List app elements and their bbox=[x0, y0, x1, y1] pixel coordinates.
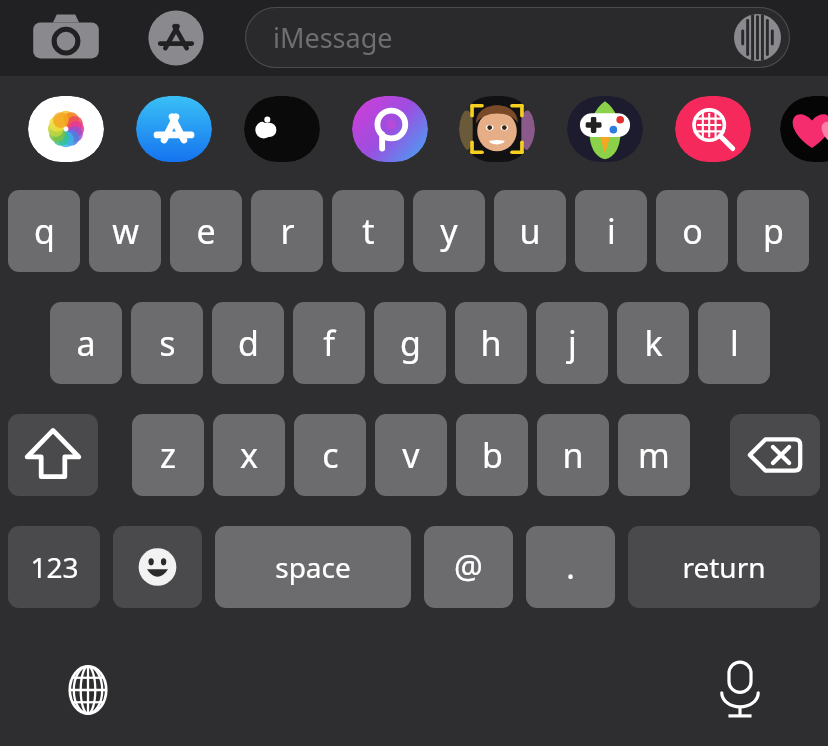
button[interactable]: return bbox=[628, 526, 820, 608]
staticText: b bbox=[482, 432, 503, 478]
button[interactable]: k bbox=[617, 302, 689, 384]
staticText: j bbox=[568, 320, 577, 366]
staticText: c bbox=[322, 432, 339, 478]
button[interactable]: z bbox=[132, 414, 204, 496]
button[interactable]: e bbox=[170, 190, 242, 272]
staticText: l bbox=[730, 320, 739, 366]
button[interactable]: App 3 bbox=[352, 96, 428, 162]
staticText: r bbox=[280, 208, 295, 254]
staticText: i bbox=[607, 208, 616, 254]
button[interactable]: Apps bbox=[140, 8, 212, 68]
staticText: e bbox=[196, 208, 216, 254]
staticText: s bbox=[159, 320, 176, 366]
button[interactable]: 123 bbox=[8, 526, 100, 608]
staticText: p bbox=[763, 208, 784, 254]
button[interactable]: p bbox=[737, 190, 809, 272]
staticText: . bbox=[566, 545, 575, 589]
staticText: f bbox=[323, 320, 335, 366]
button[interactable]: w bbox=[89, 190, 161, 272]
button[interactable]: v bbox=[375, 414, 447, 496]
button[interactable]: App 6 bbox=[675, 96, 751, 162]
button[interactable]: Audio message bbox=[734, 14, 781, 61]
button[interactable]: x bbox=[213, 414, 285, 496]
staticText: iMessage bbox=[273, 19, 393, 56]
button[interactable]: g bbox=[374, 302, 446, 384]
staticText: d bbox=[238, 320, 259, 366]
button[interactable]: App 4 bbox=[459, 96, 535, 162]
staticText: t bbox=[362, 208, 375, 254]
button[interactable]: y bbox=[413, 190, 485, 272]
button[interactable]: c bbox=[294, 414, 366, 496]
staticText: q bbox=[34, 208, 55, 254]
button[interactable]: r bbox=[251, 190, 323, 272]
button[interactable]: t bbox=[332, 190, 404, 272]
staticText: a bbox=[76, 320, 96, 366]
button[interactable]: q bbox=[8, 190, 80, 272]
staticText: @ bbox=[454, 545, 483, 589]
button[interactable]: h bbox=[455, 302, 527, 384]
button[interactable]: App 7 bbox=[780, 96, 828, 162]
button[interactable]: s bbox=[131, 302, 203, 384]
button[interactable]: space bbox=[215, 526, 411, 608]
staticText: return bbox=[682, 548, 766, 586]
button[interactable]: App 5 bbox=[567, 96, 643, 162]
button[interactable]: a bbox=[50, 302, 122, 384]
button[interactable]: m bbox=[618, 414, 690, 496]
button[interactable]: iMessage bbox=[245, 7, 790, 68]
staticText: h bbox=[480, 320, 502, 366]
button[interactable]: f bbox=[293, 302, 365, 384]
staticText: g bbox=[400, 320, 421, 366]
button[interactable]: Emoji bbox=[113, 526, 202, 608]
staticText: v bbox=[402, 432, 420, 478]
button[interactable]: Delete bbox=[730, 414, 820, 496]
staticText: z bbox=[160, 432, 176, 478]
button[interactable]: u bbox=[494, 190, 566, 272]
button[interactable]: App 0 bbox=[28, 96, 104, 162]
button[interactable]: d bbox=[212, 302, 284, 384]
button[interactable]: App 1 bbox=[136, 96, 212, 162]
button[interactable]: b bbox=[456, 414, 528, 496]
button[interactable]: App 2 bbox=[244, 96, 320, 162]
staticText: k bbox=[644, 320, 663, 366]
button[interactable]: Change keyboard language bbox=[50, 652, 126, 728]
staticText: n bbox=[562, 432, 584, 478]
button[interactable]: i bbox=[575, 190, 647, 272]
button[interactable]: Dictation bbox=[702, 652, 778, 728]
button[interactable]: Camera bbox=[25, 8, 107, 68]
button[interactable]: n bbox=[537, 414, 609, 496]
staticText: w bbox=[112, 208, 139, 254]
staticText: m bbox=[638, 432, 670, 478]
button[interactable]: . bbox=[526, 526, 615, 608]
button[interactable]: j bbox=[536, 302, 608, 384]
staticText: u bbox=[519, 208, 541, 254]
button[interactable]: l bbox=[698, 302, 770, 384]
staticText: x bbox=[240, 432, 258, 478]
staticText: space bbox=[275, 548, 351, 586]
button[interactable]: Shift bbox=[8, 414, 98, 496]
staticText: 123 bbox=[30, 548, 79, 586]
staticText: y bbox=[440, 208, 458, 254]
staticText: o bbox=[682, 208, 703, 254]
button[interactable]: o bbox=[656, 190, 728, 272]
button[interactable]: @ bbox=[424, 526, 513, 608]
